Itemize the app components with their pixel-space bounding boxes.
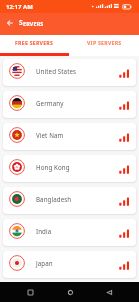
button[interactable]: Hong Kong xyxy=(3,155,136,182)
staticText: ERVERS xyxy=(23,20,44,27)
button[interactable]: Germany xyxy=(3,91,136,118)
button[interactable]: Back xyxy=(99,282,119,302)
button[interactable]: Recent apps xyxy=(20,282,40,302)
staticText: India xyxy=(36,227,52,235)
staticText: FREE SERVERS xyxy=(15,39,54,46)
button[interactable]: Home xyxy=(60,282,80,302)
button[interactable]: Back xyxy=(0,13,19,32)
button[interactable]: Bangladesh xyxy=(3,187,136,214)
staticText: Germany xyxy=(36,99,64,107)
staticText: VIP SERVERS xyxy=(87,39,122,46)
staticText: United States xyxy=(36,67,77,75)
button[interactable]: United States xyxy=(3,59,136,86)
button[interactable]: Viet Nam xyxy=(3,123,136,150)
staticText: Hong Kong xyxy=(36,163,70,171)
staticText: Japan xyxy=(36,259,53,267)
button[interactable]: India xyxy=(3,219,136,246)
button[interactable]: Japan xyxy=(3,251,136,278)
button[interactable]: FREE SERVERS xyxy=(0,35,69,50)
staticText: S xyxy=(19,18,23,27)
staticText: Viet Nam xyxy=(36,131,64,139)
staticText: Bangladesh xyxy=(36,195,72,203)
button[interactable]: VIP SERVERS xyxy=(69,35,139,50)
staticText: 12:17 AM xyxy=(6,3,33,11)
